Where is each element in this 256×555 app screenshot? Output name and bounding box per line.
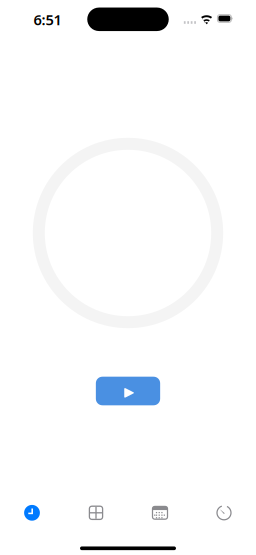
- button[interactable]: Timer: [0, 496, 64, 530]
- staticText: 6:51: [33, 10, 61, 29]
- button[interactable]: Start timer: [96, 377, 160, 405]
- button[interactable]: Stopwatch: [192, 496, 256, 530]
- button[interactable]: Schedule: [128, 496, 192, 530]
- button[interactable]: Presets: [64, 496, 128, 530]
